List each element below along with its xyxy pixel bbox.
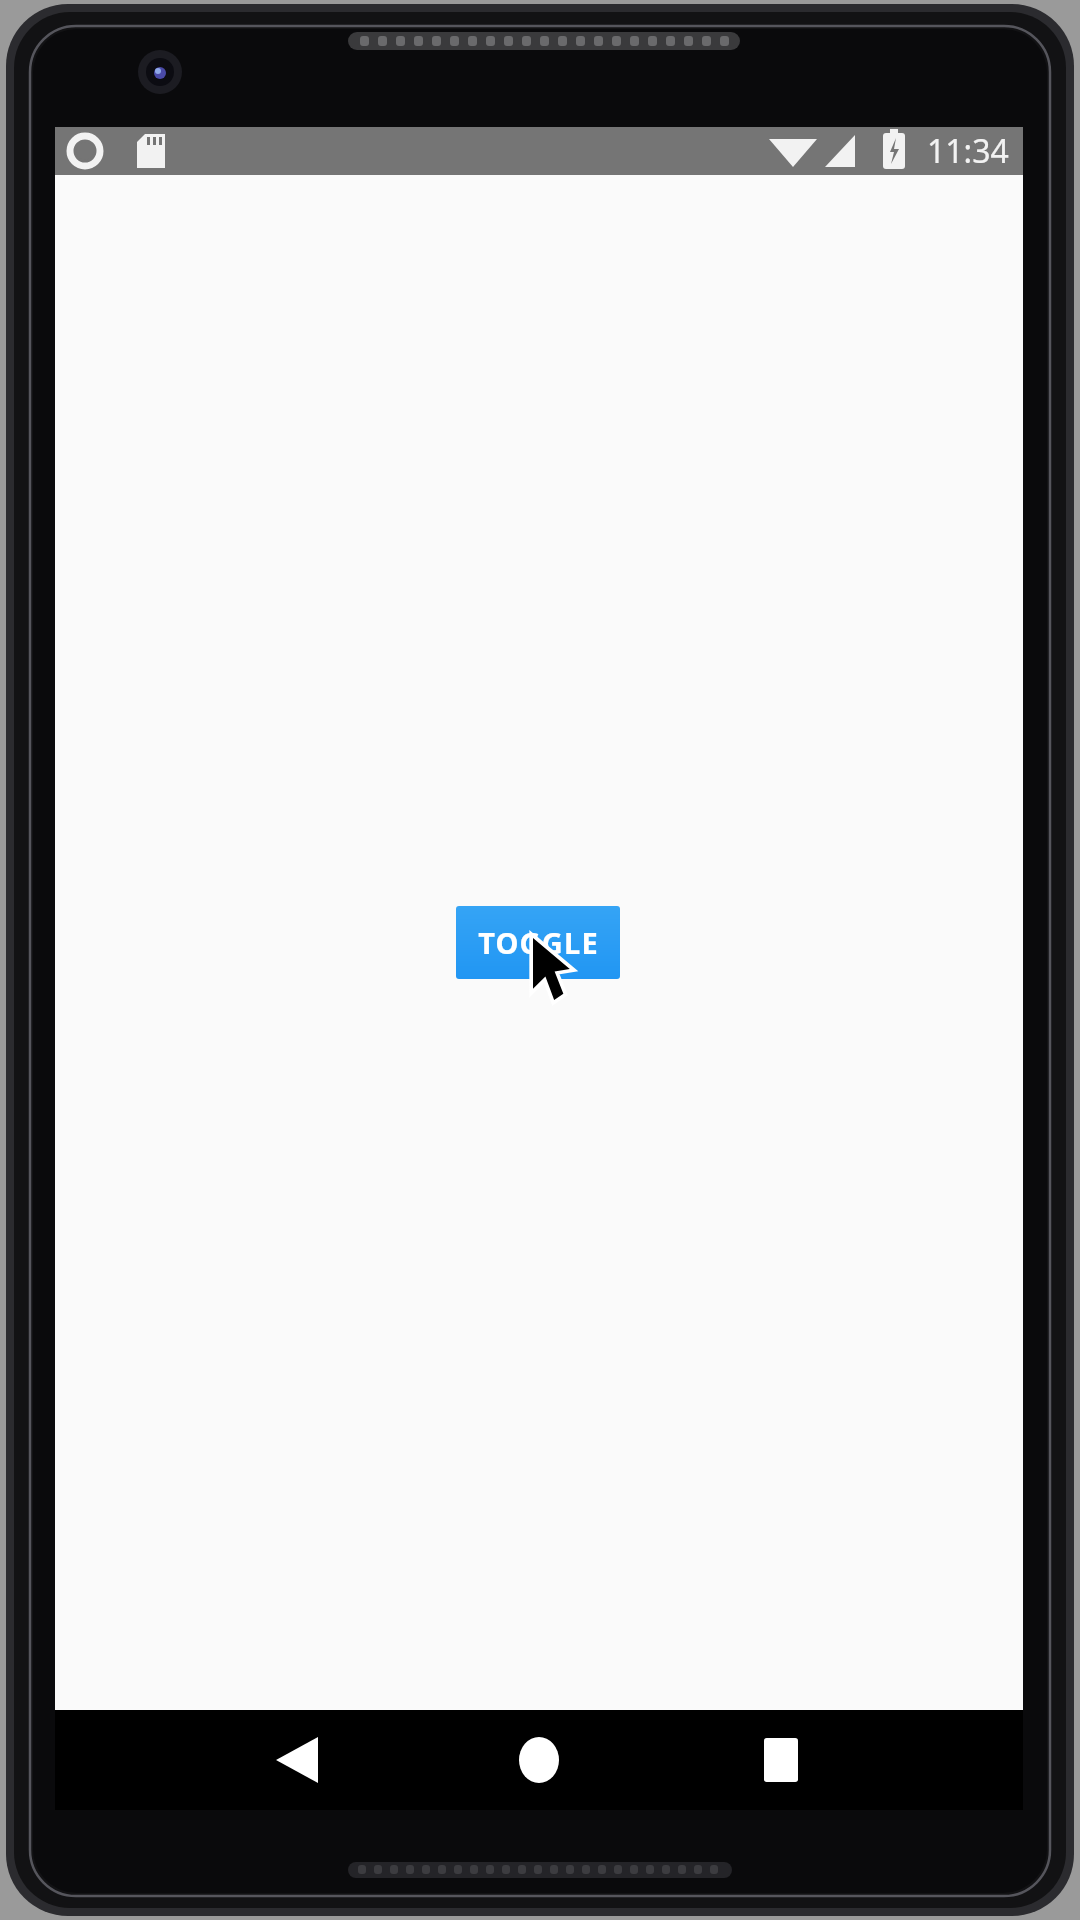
button[interactable]: Back [237,1710,357,1810]
button[interactable]: Home [479,1710,599,1810]
staticText: TOGGLE [478,923,599,962]
button[interactable]: TOGGLE [456,906,620,979]
button[interactable]: Recents [721,1710,841,1810]
staticText: 11:34 [927,129,1009,173]
